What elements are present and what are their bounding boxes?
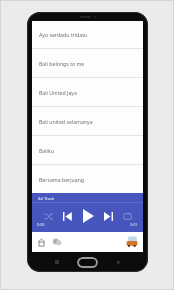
staticText: Baliku <box>39 147 54 154</box>
button[interactable]: Bali United Jaya <box>32 78 143 106</box>
staticText: 3:01 <box>130 222 138 227</box>
staticText: Bali united selamanya <box>39 118 93 125</box>
button[interactable]: Back <box>110 254 126 270</box>
button[interactable]: Baliku <box>32 136 143 164</box>
button[interactable]: Recents <box>49 254 65 270</box>
staticText: Bersama berjuang <box>39 176 85 183</box>
staticText: Bali belongs to me <box>39 60 85 67</box>
button[interactable]: Shuffle <box>40 208 56 224</box>
button[interactable]: Bersama berjuang <box>32 165 143 193</box>
button[interactable]: Ayo serdadu tridatu <box>32 21 143 48</box>
button[interactable]: Next <box>100 208 116 224</box>
staticText: Bali United Jaya <box>39 89 77 96</box>
button[interactable]: Play <box>78 206 98 226</box>
staticText: 0:00 <box>37 222 45 227</box>
button[interactable]: Bali united selamanya <box>32 107 143 135</box>
staticText: Ayo serdadu tridatu <box>39 31 88 38</box>
button[interactable]: Advertisement <box>32 232 143 252</box>
button[interactable]: Previous <box>59 208 75 224</box>
button[interactable]: Bali belongs to me <box>32 49 143 77</box>
button[interactable]: Repeat <box>119 208 135 224</box>
staticText: Ali Tisak <box>38 196 54 202</box>
button[interactable]: Home <box>77 257 98 268</box>
